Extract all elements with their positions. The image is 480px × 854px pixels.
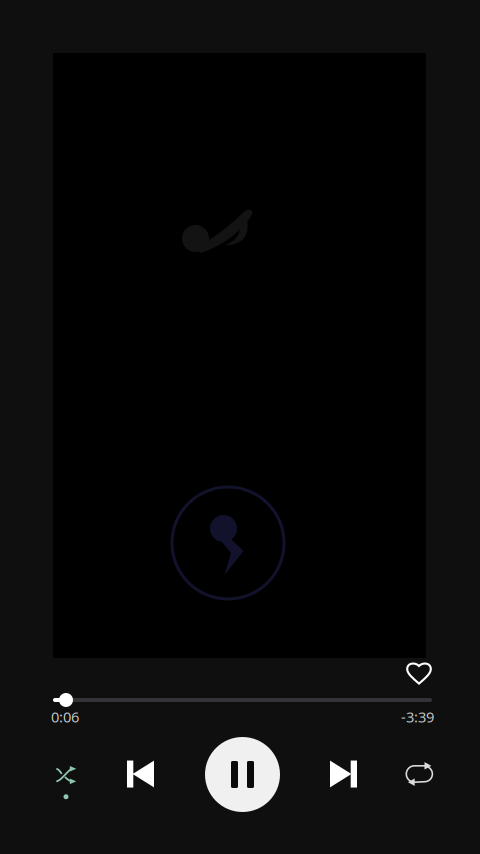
button[interactable]: Like bbox=[401, 656, 437, 690]
button[interactable]: Pause bbox=[205, 737, 280, 812]
button[interactable]: Repeat bbox=[395, 748, 443, 800]
button[interactable]: Shuffle bbox=[42, 757, 90, 809]
button[interactable]: Previous track bbox=[117, 748, 165, 800]
staticText: -3:39 bbox=[401, 707, 434, 726]
button[interactable]: Next track bbox=[319, 748, 367, 800]
staticText: 0:06 bbox=[51, 707, 79, 726]
